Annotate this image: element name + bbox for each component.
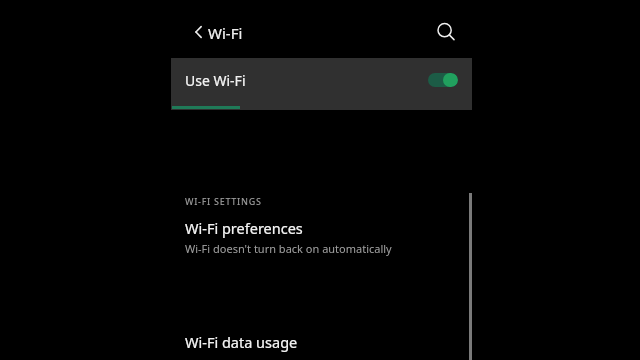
button[interactable]: Use Wi-Fi <box>171 58 472 110</box>
staticText: Use Wi-Fi <box>185 71 246 90</box>
staticText: Wi-Fi doesn't turn back on automatically <box>185 241 392 256</box>
button[interactable]: Search <box>428 14 464 50</box>
staticText: Wi-Fi data usage <box>185 332 298 352</box>
staticText: WI-FI SETTINGS <box>185 195 262 207</box>
button[interactable]: Wi-Fi preferences <box>171 215 472 262</box>
button[interactable]: Wi-Fi data usage <box>171 324 472 360</box>
button[interactable]: Back <box>181 14 217 50</box>
staticText: Wi-Fi <box>208 23 243 43</box>
button[interactable]: Use Wi-Fi toggle <box>428 73 458 87</box>
staticText: Wi-Fi preferences <box>185 218 303 238</box>
